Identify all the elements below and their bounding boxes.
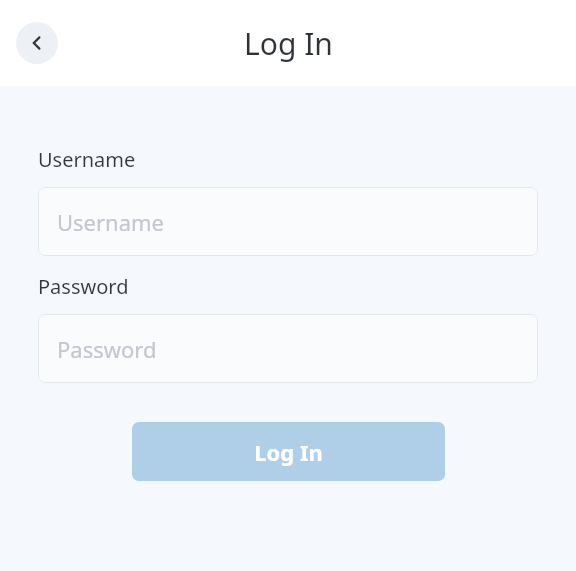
staticText: Password bbox=[38, 273, 129, 300]
button[interactable]: Back bbox=[16, 22, 58, 64]
button[interactable]: Log In bbox=[132, 422, 445, 481]
staticText: Password bbox=[57, 334, 157, 364]
staticText: Username bbox=[38, 146, 136, 173]
staticText: Username bbox=[57, 207, 165, 237]
button[interactable]: Password bbox=[38, 314, 538, 383]
button[interactable]: Username bbox=[38, 187, 538, 256]
staticText: Log In bbox=[254, 437, 323, 467]
staticText: Log In bbox=[244, 23, 333, 64]
